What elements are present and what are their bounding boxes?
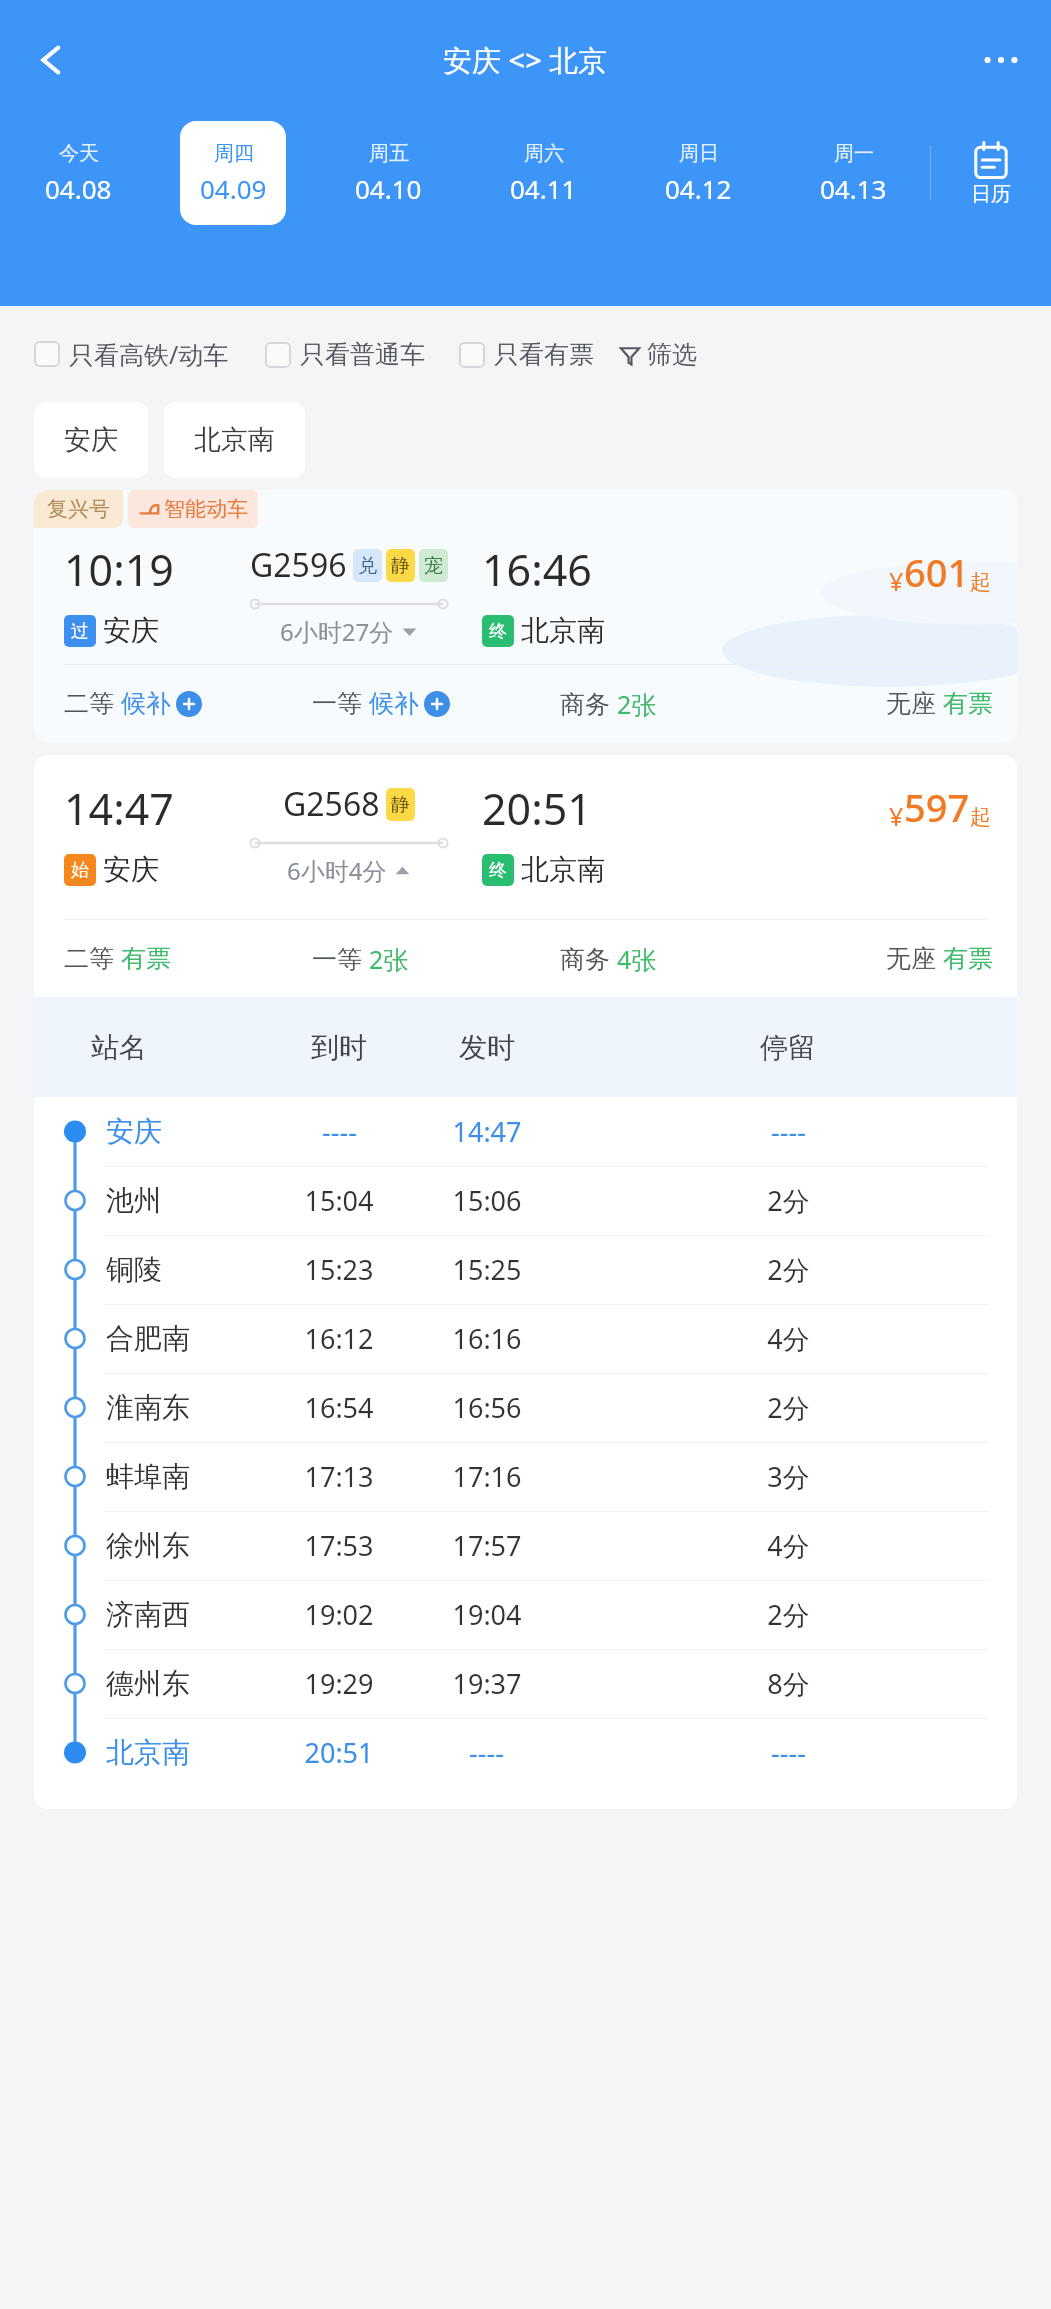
staticText: 15:23 (304, 1251, 374, 1288)
staticText: 17:13 (304, 1458, 374, 1495)
staticText: 597 (904, 781, 970, 833)
button[interactable]: 商务 (560, 942, 657, 976)
staticText: 智能动车 (164, 496, 248, 522)
staticText: 04.10 (355, 171, 422, 206)
staticText: 到时 (311, 1030, 367, 1065)
staticText: 蚌埠南 (106, 1459, 190, 1494)
staticText: 16:56 (452, 1389, 522, 1426)
button[interactable]: 今天 (25, 121, 131, 225)
staticText: 北京南 (106, 1735, 190, 1770)
button[interactable]: 只看有票 (459, 339, 594, 370)
staticText: 19:04 (452, 1596, 522, 1633)
staticText: 过 (71, 620, 89, 643)
staticText: 4分 (767, 1527, 810, 1564)
staticText: 周四 (214, 141, 254, 166)
staticText: 周一 (834, 141, 874, 166)
staticText: 15:04 (304, 1182, 374, 1219)
staticText: 起 (970, 804, 991, 830)
staticText: 只看有票 (494, 339, 594, 370)
staticText: 合肥南 (106, 1321, 190, 1356)
button[interactable]: 北京南 (164, 402, 305, 478)
staticText: 04.13 (820, 171, 887, 206)
staticText: 淮南东 (106, 1390, 190, 1425)
staticText: 周日 (679, 141, 719, 166)
staticText: 2张 (369, 942, 409, 976)
staticText: 复兴号 (47, 496, 110, 522)
staticText: 6小时27分 (280, 615, 394, 648)
staticText: 16:12 (304, 1320, 374, 1357)
staticText: 安庆 (106, 1114, 162, 1149)
staticText: 2分 (767, 1389, 810, 1426)
staticText: ---- (771, 1734, 806, 1771)
staticText: 德州东 (106, 1666, 190, 1701)
staticText: 安庆 <> 北京 (443, 40, 608, 80)
staticText: 候补 (369, 688, 419, 719)
staticText: 无座 (886, 688, 936, 719)
button[interactable]: 二等 (64, 943, 171, 974)
staticText: 安庆 (103, 613, 159, 648)
button[interactable]: 14:47 (34, 755, 1017, 887)
button[interactable]: 无座 (886, 688, 993, 719)
staticText: 2分 (767, 1596, 810, 1633)
button[interactable]: 周六 (490, 121, 596, 225)
button[interactable]: 只看普通车 (265, 339, 425, 370)
staticText: 静 (391, 793, 410, 817)
button[interactable]: 周日 (645, 121, 751, 225)
button[interactable]: 复兴号 (34, 490, 1017, 742)
staticText: 兑 (358, 554, 377, 578)
staticText: 有票 (121, 943, 171, 974)
button[interactable]: 无座 (886, 943, 993, 974)
staticText: ---- (469, 1734, 504, 1771)
staticText: 商务 (560, 944, 610, 975)
staticText: ---- (771, 1113, 806, 1150)
button[interactable]: Calendar (931, 118, 1051, 228)
staticText: 14:47 (64, 779, 174, 838)
staticText: 安庆 (64, 423, 118, 457)
button[interactable]: Back (20, 32, 76, 88)
staticText: 04.09 (200, 171, 267, 206)
staticText: 安庆 (103, 852, 159, 887)
staticText: 16:54 (304, 1389, 374, 1426)
button[interactable]: 周五 (335, 121, 441, 225)
staticText: 8分 (767, 1665, 810, 1702)
button[interactable]: 只看高铁/动车 (34, 337, 229, 371)
staticText: 铜陵 (106, 1252, 162, 1287)
button[interactable]: 安庆 (34, 402, 148, 478)
staticText: 19:29 (304, 1665, 374, 1702)
staticText: 17:16 (452, 1458, 522, 1495)
button[interactable]: 一等 (312, 942, 409, 976)
button[interactable]: More options (973, 32, 1029, 88)
button[interactable]: 周一 (800, 121, 906, 225)
staticText: 起 (970, 569, 991, 595)
button[interactable]: 一等 (312, 688, 450, 719)
staticText: 二等 (64, 688, 114, 719)
staticText: 04.08 (45, 171, 112, 206)
staticText: 4张 (617, 942, 657, 976)
staticText: 3分 (767, 1458, 810, 1495)
staticText: 14:47 (452, 1113, 522, 1150)
staticText: 04.12 (665, 171, 732, 206)
staticText: 今天 (59, 141, 99, 166)
button[interactable]: 筛选 (618, 339, 697, 370)
button[interactable]: 商务 (560, 687, 657, 721)
staticText: 北京南 (521, 613, 605, 648)
staticText: 04.11 (510, 171, 577, 206)
staticText: 16:16 (452, 1320, 522, 1357)
staticText: 静 (391, 554, 410, 578)
button[interactable]: 周四 (180, 121, 286, 225)
staticText: 筛选 (647, 339, 697, 370)
staticText: 停留 (760, 1030, 816, 1065)
staticText: 池州 (106, 1183, 162, 1218)
staticText: 10:19 (64, 540, 174, 599)
staticText: 候补 (121, 688, 171, 719)
staticText: 有票 (943, 943, 993, 974)
staticText: 2张 (617, 687, 657, 721)
button[interactable]: 二等 (64, 688, 202, 719)
staticText: 19:02 (304, 1596, 374, 1633)
staticText: G2596 (250, 543, 347, 587)
staticText: 周五 (369, 141, 409, 166)
staticText: ¥ (889, 564, 904, 598)
staticText: 无座 (886, 943, 936, 974)
staticText: 17:53 (304, 1527, 374, 1564)
staticText: ---- (322, 1113, 357, 1150)
